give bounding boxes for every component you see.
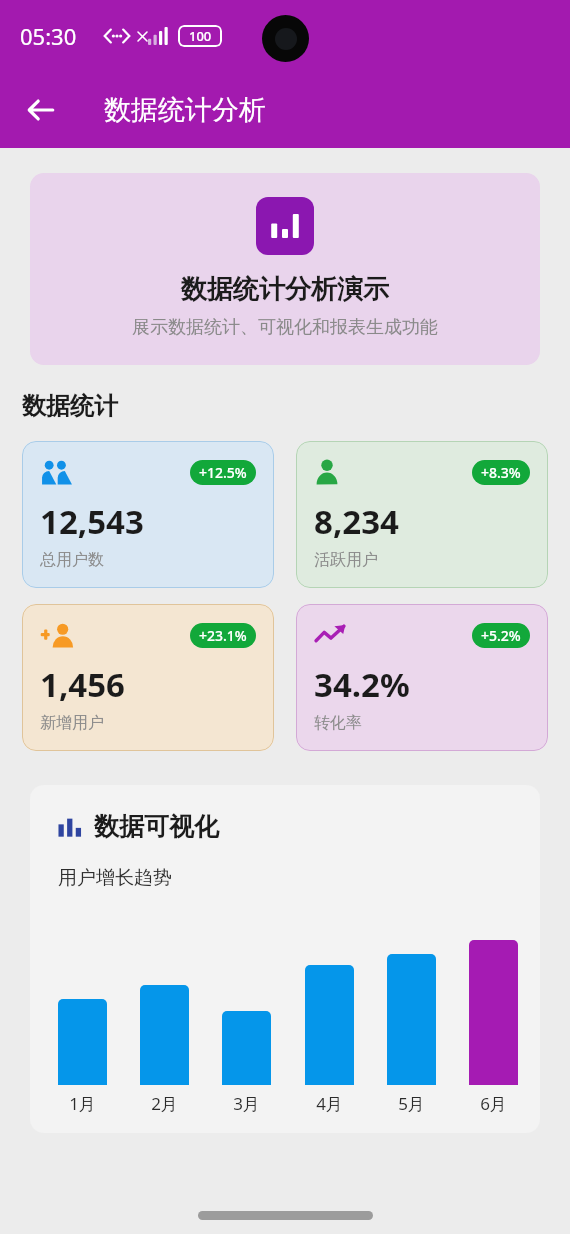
staticText: 6月 bbox=[480, 1092, 507, 1115]
staticText: 1,456 bbox=[40, 662, 125, 707]
button[interactable]: +12.5% bbox=[22, 441, 274, 588]
staticText: 4月 bbox=[316, 1092, 343, 1115]
staticText: +12.5% bbox=[199, 463, 247, 482]
staticText: 展示数据统计、可视化和报表生成功能 bbox=[132, 316, 438, 339]
staticText: 数据统计分析 bbox=[104, 93, 266, 127]
button[interactable]: 数据统计分析演示 bbox=[30, 173, 540, 365]
button[interactable]: 数据可视化 bbox=[30, 785, 540, 1133]
staticText: 总用户数 bbox=[40, 550, 104, 570]
staticText: 3月 bbox=[233, 1092, 260, 1115]
staticText: 100 bbox=[189, 27, 212, 45]
staticText: 转化率 bbox=[314, 713, 362, 733]
staticText: 数据统计 bbox=[22, 391, 118, 421]
staticText: 05:30 bbox=[20, 21, 77, 51]
staticText: 12,543 bbox=[40, 499, 144, 544]
staticText: 5月 bbox=[398, 1092, 425, 1115]
staticText: +5.2% bbox=[481, 626, 521, 645]
staticText: 数据统计分析演示 bbox=[181, 273, 389, 306]
staticText: 1月 bbox=[69, 1092, 96, 1115]
button[interactable]: +23.1% bbox=[22, 604, 274, 751]
staticText: 活跃用户 bbox=[314, 550, 378, 570]
button[interactable]: Back bbox=[14, 83, 68, 137]
staticText: 34.2% bbox=[314, 662, 410, 707]
staticText: 新增用户 bbox=[40, 713, 104, 733]
staticText: +23.1% bbox=[199, 626, 247, 645]
staticText: 数据可视化 bbox=[94, 811, 219, 842]
staticText: 用户增长趋势 bbox=[58, 866, 172, 890]
button[interactable]: +5.2% bbox=[296, 604, 548, 751]
button[interactable]: +8.3% bbox=[296, 441, 548, 588]
staticText: 8,234 bbox=[314, 499, 399, 544]
staticText: +8.3% bbox=[481, 463, 521, 482]
staticText: 2月 bbox=[151, 1092, 178, 1115]
